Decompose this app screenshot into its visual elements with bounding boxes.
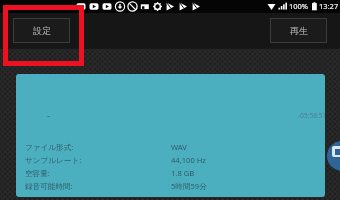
button[interactable]: 設定 <box>13 18 70 43</box>
staticText: 13:27 <box>319 1 339 11</box>
staticText: -05:58:57 <box>298 111 325 120</box>
staticText: サンプルレート: <box>25 155 82 165</box>
staticText: 1.8 GB <box>171 168 195 178</box>
staticText: - <box>47 109 50 121</box>
staticText: 空容量: <box>25 168 50 178</box>
staticText: 100% <box>289 1 309 11</box>
staticText: ファイル形式: <box>25 142 74 152</box>
button[interactable]: Floating chat bubble <box>327 141 340 171</box>
staticText: 5時間59分 <box>171 181 207 191</box>
button[interactable]: 再生 <box>270 18 327 43</box>
button[interactable]: - <box>16 74 325 197</box>
staticText: 再生 <box>290 25 308 36</box>
staticText: 録音可能時間: <box>25 181 73 191</box>
staticText: 44,100 Hz <box>171 155 206 165</box>
staticText: WAV <box>171 142 187 152</box>
staticText: 設定 <box>33 25 51 36</box>
